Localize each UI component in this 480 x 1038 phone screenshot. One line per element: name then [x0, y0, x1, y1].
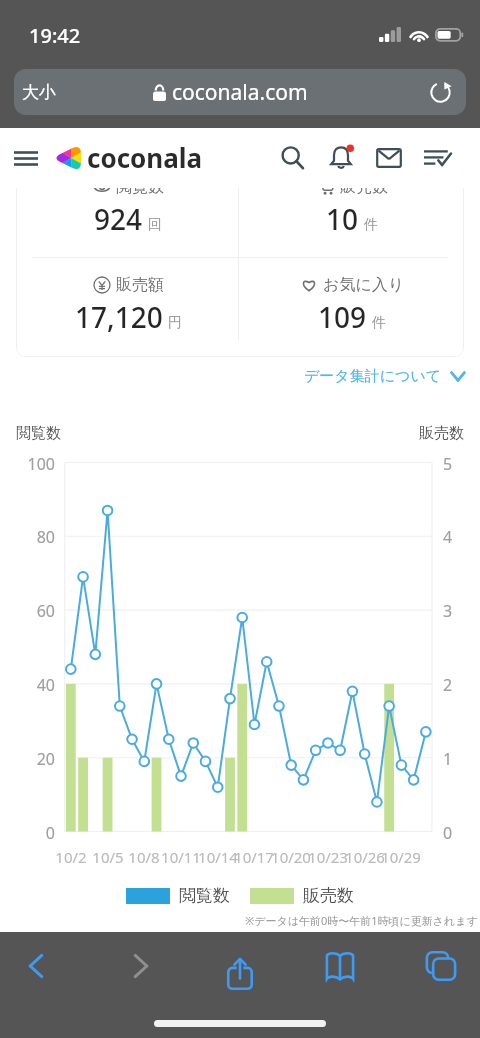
staticText: 40	[5, 674, 55, 696]
staticText: coconala	[87, 140, 203, 175]
other: Reload	[430, 82, 451, 103]
staticText: 10/2	[46, 847, 96, 867]
staticText: 4	[443, 526, 453, 548]
staticText: 販売額	[116, 275, 164, 295]
button[interactable]: Forward	[111, 932, 169, 1000]
staticText: 924	[94, 200, 143, 238]
button[interactable]: Messages	[365, 134, 413, 182]
button[interactable]: Back	[8, 932, 66, 1000]
button[interactable]: Notifications	[317, 134, 365, 182]
button[interactable]: Tabs	[412, 932, 470, 1000]
staticText: 0	[443, 822, 453, 844]
staticText: 2	[443, 674, 453, 696]
staticText: 60	[5, 600, 55, 622]
button[interactable]: 大小	[14, 69, 466, 115]
staticText: 10/8	[119, 847, 169, 867]
button[interactable]: 販売数	[240, 159, 464, 238]
staticText: 回	[148, 216, 162, 234]
button[interactable]: Bookmarks	[311, 932, 369, 1000]
staticText: 109	[318, 298, 367, 336]
button[interactable]: 販売額	[16, 257, 240, 336]
staticText: 販売数	[303, 885, 354, 906]
staticText: 5	[443, 453, 453, 475]
staticText: 1	[443, 748, 453, 770]
button[interactable]: お気に入り	[240, 257, 464, 336]
staticText: 100	[5, 453, 55, 475]
staticText: coconala.com	[172, 78, 308, 107]
staticText: 10/26	[340, 847, 390, 867]
staticText: 閲覧数	[179, 885, 230, 906]
staticText: 20	[5, 748, 55, 770]
staticText: 10/17	[229, 847, 279, 867]
staticText: 閲覧数	[116, 177, 164, 197]
staticText: 閲覧数	[16, 424, 61, 443]
staticText: 10	[326, 200, 359, 238]
staticText: ※データは午前0時〜午前1時頃に更新されます	[245, 913, 478, 928]
staticText: 10/14	[193, 847, 243, 867]
staticText: 17,120	[75, 298, 163, 336]
staticText: 件	[372, 314, 386, 332]
staticText: 販売数	[340, 177, 388, 197]
staticText: 10/23	[303, 847, 353, 867]
staticText: 件	[364, 216, 378, 234]
button[interactable]: 閲覧数	[16, 159, 240, 238]
staticText: データ集計について	[304, 367, 442, 386]
button[interactable]: Share	[211, 932, 269, 1000]
staticText: 10/29	[376, 847, 426, 867]
staticText: 3	[443, 600, 453, 622]
staticText: 19:42	[29, 22, 81, 49]
button[interactable]: Tasks	[413, 134, 461, 182]
staticText: 10/5	[83, 847, 133, 867]
staticText: 0	[5, 822, 55, 844]
button[interactable]: Search	[269, 134, 317, 182]
staticText: 80	[5, 526, 55, 548]
staticText: お気に入り	[323, 275, 405, 295]
staticText: 円	[168, 314, 182, 332]
button[interactable]: Menu	[8, 140, 44, 176]
staticText: 販売数	[419, 424, 464, 443]
staticText: 10/20	[266, 847, 316, 867]
staticText: 10/11	[156, 847, 206, 867]
staticText: 大小	[22, 82, 56, 103]
button[interactable]: データ集計について	[0, 360, 466, 393]
